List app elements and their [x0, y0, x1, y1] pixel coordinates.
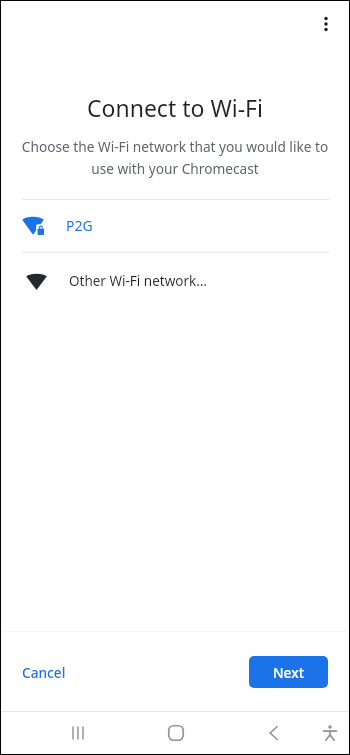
- staticText: Other Wi-Fi network…: [69, 272, 207, 290]
- button[interactable]: More options: [311, 9, 341, 39]
- staticText: Choose the Wi-Fi network that you would …: [21, 137, 329, 178]
- button[interactable]: Back: [253, 712, 295, 754]
- staticText: Next: [273, 663, 304, 682]
- button[interactable]: Other Wi-Fi network…: [1, 253, 349, 311]
- button[interactable]: Next: [249, 656, 328, 688]
- button[interactable]: Accessibility: [309, 712, 350, 754]
- button[interactable]: Cancel: [10, 655, 78, 690]
- button[interactable]: Home: [155, 712, 197, 754]
- staticText: P2G: [66, 216, 93, 235]
- staticText: Cancel: [22, 663, 66, 682]
- staticText: Connect to Wi-Fi: [1, 92, 349, 123]
- button[interactable]: P2G: [1, 200, 349, 252]
- button[interactable]: Recent apps: [57, 712, 99, 754]
